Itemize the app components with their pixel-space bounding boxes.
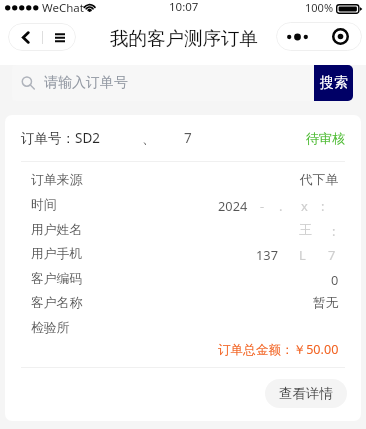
staticText: 检验所	[31, 320, 70, 336]
staticText: :	[321, 197, 325, 214]
staticText: :	[332, 222, 336, 239]
staticText: 订单来源	[31, 172, 83, 188]
staticText: 客户编码	[31, 271, 83, 287]
staticText: 请输入订单号	[44, 74, 128, 92]
staticText: 待审核	[306, 130, 345, 146]
staticText: 用户手机	[31, 246, 83, 262]
staticText: 我的客户测序订单	[110, 27, 258, 50]
button[interactable]: 请输入订单号	[12, 65, 314, 101]
staticText: x	[301, 197, 308, 214]
staticText: 10:07	[169, 0, 199, 15]
staticText: L	[299, 246, 306, 263]
staticText: 137	[256, 246, 278, 263]
button[interactable]: 查看详情	[265, 379, 347, 408]
staticText: 7	[328, 246, 336, 263]
button[interactable]: Menu	[43, 23, 76, 51]
staticText: 时间	[31, 197, 57, 213]
staticText: .	[279, 197, 283, 214]
staticText: WeChat	[42, 0, 84, 16]
button[interactable]: More	[276, 22, 318, 51]
button[interactable]: Close	[318, 22, 362, 51]
staticText: 2024	[218, 197, 248, 214]
staticText: 订单号：SD2	[21, 129, 100, 147]
staticText: 代下单	[300, 172, 339, 188]
staticText: 0	[331, 271, 339, 288]
staticText: 客户名称	[31, 295, 83, 311]
button[interactable]: Back	[8, 23, 43, 51]
staticText: 暂无	[313, 295, 339, 311]
button[interactable]: 搜索	[314, 65, 353, 101]
staticText: 王	[299, 222, 312, 238]
staticText: 7	[184, 129, 192, 147]
staticText: 100%	[305, 0, 334, 15]
staticText: 搜索	[320, 74, 348, 92]
staticText: -	[260, 197, 265, 214]
staticText: 订单总金额：￥50.00	[218, 341, 339, 358]
staticText: 用户姓名	[31, 222, 83, 238]
staticText: 查看详情	[279, 385, 333, 402]
staticText: 、	[142, 130, 156, 147]
